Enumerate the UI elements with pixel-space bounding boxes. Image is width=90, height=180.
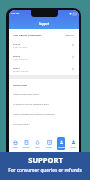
button[interactable]: View all — [64, 32, 75, 37]
button[interactable]: All Products are not showing in app ? — [9, 99, 79, 109]
other: Profile — [71, 140, 76, 145]
staticText: Refill — [35, 146, 40, 148]
staticText: For consumer queries or refunds — [8, 167, 82, 173]
button[interactable]: #0871 — [9, 63, 79, 75]
staticText: #0932 — [13, 54, 21, 57]
other: Orders — [47, 140, 52, 145]
other: Refill — [35, 140, 40, 145]
staticText: All Products are not showing in app ? — [13, 103, 50, 106]
other: Support — [59, 140, 64, 145]
button[interactable]: Orders — [43, 135, 55, 152]
other: Machine — [24, 140, 29, 145]
other: Open — [71, 67, 75, 71]
staticText: Any other issue ? — [13, 123, 30, 126]
staticText: Other Help? — [13, 83, 28, 86]
staticText: 2 Jun, 11:02 AM — [13, 58, 28, 61]
staticText: Your Recent Complaints — [13, 33, 42, 36]
button[interactable]: Refill — [31, 135, 43, 152]
staticText: Having trouble with issue ? — [13, 93, 40, 96]
other: Open — [71, 43, 75, 47]
staticText: #1243 — [13, 42, 21, 45]
button[interactable]: Any other issue ? — [9, 119, 79, 129]
button[interactable]: Having trouble with issue ? — [9, 89, 79, 99]
staticText: #0871 — [13, 66, 21, 69]
staticText: Support — [39, 22, 50, 26]
button[interactable]: Profile — [67, 135, 79, 152]
button[interactable]: Machine — [20, 135, 31, 152]
staticText: Home — [12, 146, 18, 148]
other: Open — [71, 55, 75, 59]
button[interactable]: Wrong Placement of products in machine ? — [9, 109, 79, 119]
button[interactable]: #1243 — [9, 39, 79, 51]
staticText: 5 Jun, 01:12 PM — [13, 46, 28, 49]
staticText: SUPPORT — [28, 155, 63, 165]
button[interactable]: Home — [9, 135, 20, 152]
staticText: Machine — [22, 146, 30, 148]
staticText: Support — [58, 146, 65, 148]
other: Home — [13, 140, 18, 145]
staticText: Profile — [70, 146, 76, 148]
staticText: 1:53 PM — [11, 12, 20, 15]
staticText: View all — [65, 33, 74, 36]
staticText: Orders — [46, 146, 52, 148]
staticText: 28 May, 6:40 PM — [13, 70, 29, 73]
button[interactable]: Support — [55, 135, 67, 152]
staticText: Wrong Placement of products in machine ? — [13, 113, 56, 116]
button[interactable]: #0932 — [9, 51, 79, 63]
